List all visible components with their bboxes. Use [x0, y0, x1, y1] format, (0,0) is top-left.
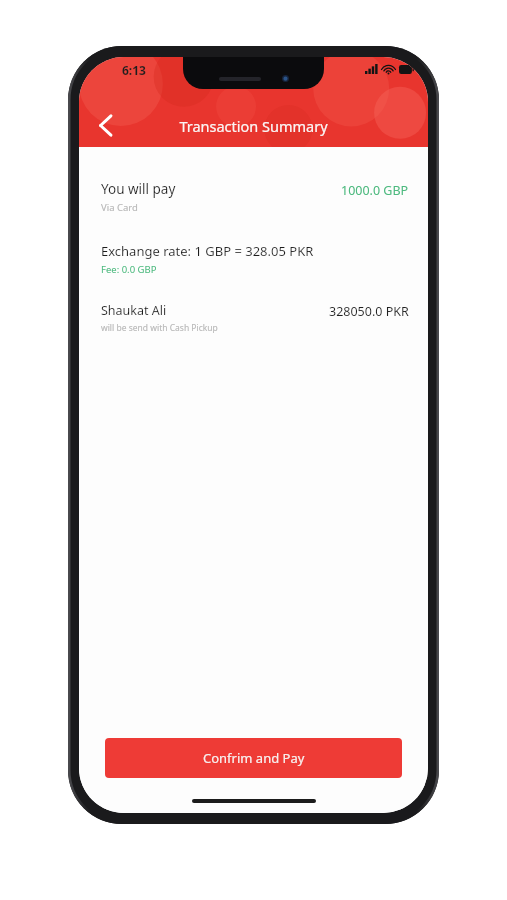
- staticText: 1000.0 GBP: [341, 182, 409, 199]
- button[interactable]: Back: [85, 105, 125, 145]
- button[interactable]: Shaukat Ali: [79, 302, 428, 334]
- staticText: will be send with Cash Pickup: [101, 322, 218, 334]
- staticText: Exchange rate: 1 GBP = 328.05 PKR: [101, 242, 314, 260]
- staticText: 6:13: [122, 62, 146, 78]
- staticText: 328050.0 PKR: [329, 303, 409, 320]
- staticText: Fee: 0.0 GBP: [101, 263, 157, 276]
- button[interactable]: Exchange rate: 1 GBP = 328.05 PKR: [79, 242, 428, 276]
- staticText: Via Card: [101, 201, 138, 214]
- button[interactable]: Confrim and Pay: [105, 738, 402, 778]
- staticText: Shaukat Ali: [101, 302, 167, 319]
- staticText: Confrim and Pay: [203, 749, 305, 767]
- button[interactable]: You will pay: [79, 178, 428, 216]
- staticText: Transaction Summary: [179, 116, 328, 136]
- staticText: You will pay: [101, 180, 176, 198]
